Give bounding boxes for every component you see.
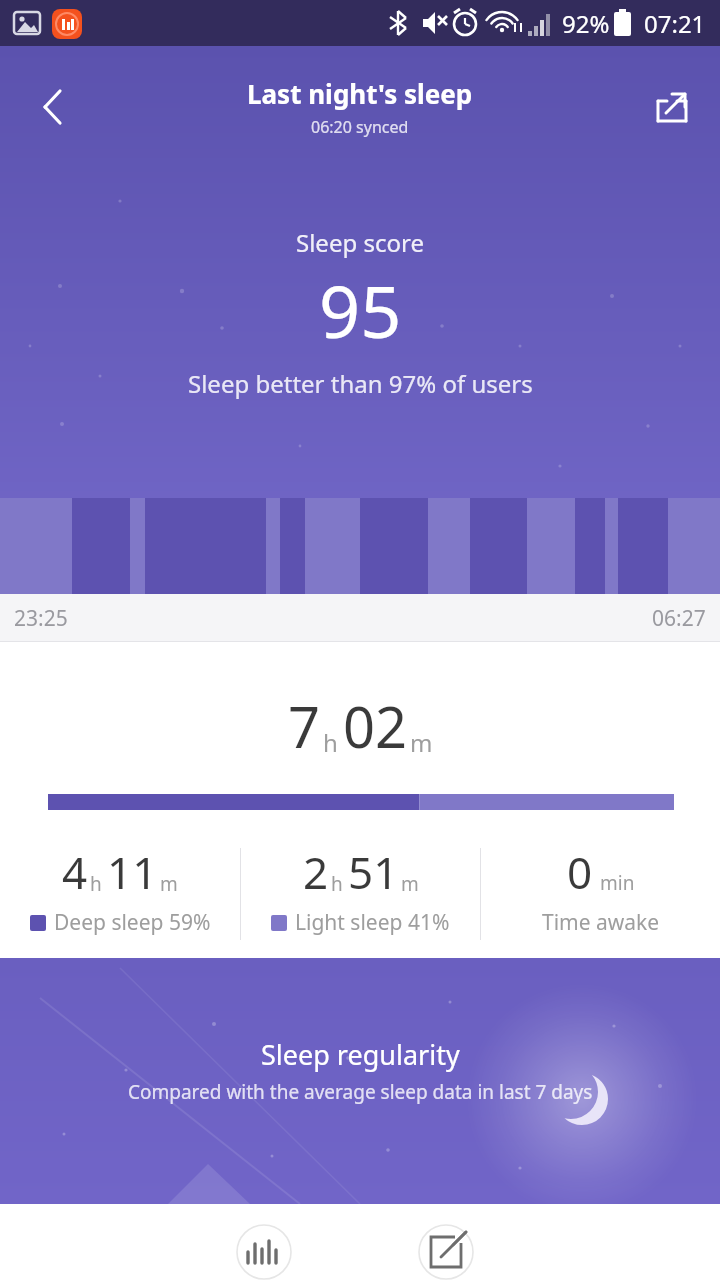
button[interactable]: 4 [0,842,240,937]
staticText: 23:25 [14,604,68,633]
button[interactable]: 2 [241,842,480,937]
staticText: h [323,726,338,759]
staticText: m [410,726,433,759]
button[interactable]: History [228,1224,299,1280]
staticText: Deep sleep 59% [54,908,211,937]
staticText: m [401,871,419,897]
staticText: Time awake [542,908,660,937]
button[interactable]: 0 [481,842,720,937]
staticText: 07:21 [644,7,706,40]
staticText: Sleep score [296,226,424,259]
staticText: 92% [562,7,610,40]
staticText: h [90,871,102,897]
staticText: min [600,870,635,896]
staticText: 06:27 [652,604,706,633]
staticText: 02 [343,688,408,764]
staticText: 95 [319,261,402,359]
staticText: Sleep regularity [261,1036,460,1073]
staticText: Light sleep 41% [295,908,450,937]
staticText: 4 [62,842,88,902]
button[interactable]: Share [646,81,698,133]
staticText: m [160,871,178,897]
button[interactable]: Redigeeri [399,1224,493,1280]
button[interactable]: Sleep regularity [0,958,720,1204]
staticText: 06:20 synced [311,116,409,138]
staticText: h [331,871,343,897]
button[interactable]: Back [26,81,78,133]
staticText: 11 [107,842,158,902]
staticText: Compared with the average sleep data in … [128,1079,593,1105]
staticText: Sleep better than 97% of users [188,367,533,400]
staticText: Last night's sleep [247,76,473,111]
staticText: 2 [303,842,329,902]
staticText: 51 [348,842,399,902]
staticText: 7 [288,688,321,764]
staticText: 0 [567,842,593,902]
